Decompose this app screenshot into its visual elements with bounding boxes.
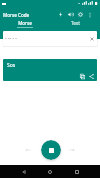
button[interactable]: Flash bbox=[55, 9, 65, 20]
button[interactable]: Previous bbox=[22, 144, 34, 156]
button[interactable]: Share bbox=[87, 72, 96, 81]
staticText: Morse Code bbox=[3, 12, 30, 18]
button[interactable]: Text bbox=[50, 19, 100, 29]
staticText: Text bbox=[71, 20, 80, 26]
button[interactable]: Recents bbox=[71, 166, 82, 177]
staticText: Sos bbox=[7, 62, 16, 69]
button[interactable]: Home bbox=[44, 166, 55, 177]
button[interactable]: Next bbox=[66, 144, 78, 156]
button[interactable]: Settings bbox=[75, 9, 85, 20]
staticText: Morse bbox=[18, 20, 32, 26]
button[interactable]: Back bbox=[18, 166, 29, 177]
button[interactable]: Sos bbox=[3, 59, 97, 81]
button[interactable]: Morse bbox=[0, 19, 50, 29]
button[interactable]: Copy bbox=[78, 72, 87, 81]
button[interactable]: Sound bbox=[65, 9, 75, 20]
button[interactable]: Clear bbox=[88, 35, 96, 43]
staticText: - -- - - bbox=[5, 35, 17, 42]
button[interactable]: More options bbox=[85, 9, 95, 20]
button[interactable]: Stop bbox=[41, 140, 61, 160]
